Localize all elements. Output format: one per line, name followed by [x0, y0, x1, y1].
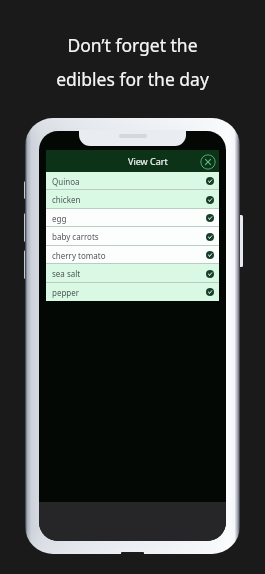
button[interactable]: cherry tomato	[46, 246, 219, 264]
staticText: View Cart	[128, 155, 168, 167]
button[interactable]: Close cart	[200, 154, 216, 170]
button[interactable]: egg	[46, 209, 219, 227]
staticText: egg	[52, 213, 67, 224]
button[interactable]: Quinoa	[46, 172, 219, 190]
staticText: Quinoa	[52, 176, 80, 187]
button[interactable]: sea salt	[46, 264, 219, 283]
staticText: baby carrots	[52, 231, 99, 242]
staticText: pepper	[52, 287, 80, 298]
staticText: cherry tomato	[52, 250, 106, 261]
staticText: edibles for the day	[56, 67, 209, 91]
button[interactable]: chicken	[46, 190, 219, 209]
button[interactable]: baby carrots	[46, 227, 219, 246]
staticText: chicken	[52, 194, 81, 205]
staticText: Don’t forget the	[67, 33, 198, 57]
staticText: sea salt	[52, 268, 81, 279]
button[interactable]: pepper	[46, 283, 219, 301]
